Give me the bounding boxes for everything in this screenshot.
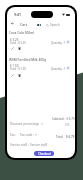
other: Search [46,24,49,27]
button[interactable]: Increase quantity [66,40,70,44]
button[interactable]: Delete [18,74,21,77]
button[interactable]: Cart [20,22,28,27]
staticText: 9:41 [14,12,22,17]
button[interactable]: Edit [11,47,14,50]
button[interactable]: Delete [18,47,21,50]
staticText: $ 1.50 [10,64,19,68]
button[interactable]: Toggle [37,24,41,26]
button[interactable]: Discount percentage [10,122,43,126]
staticText: Quantity : 1 [51,41,66,45]
staticText: Quantity : 1 [51,67,66,71]
staticText: Tax code : [20,133,34,137]
staticText: Total : $ 1.50 [10,67,26,71]
button[interactable]: Edit [11,74,14,77]
button[interactable]: Back [11,22,14,25]
staticText: Discount percentage [10,122,40,126]
staticText: Total : $ 3.25 [10,41,26,45]
staticText: Search [50,23,60,27]
staticText: Total [56,135,63,139]
staticText: Tax : [10,133,17,137]
staticText: Coca Cola 500ml [9,31,35,35]
staticText: $ 6.75 [66,135,75,139]
staticText: Subtotal : $ 6.75 [52,117,75,121]
staticText: $ 3.25 [10,38,19,42]
staticText: Checkout [38,152,51,156]
staticText: Service staff : [10,143,29,147]
staticText: 0 % [65,123,70,127]
staticText: Service staff [30,143,48,147]
button[interactable]: Search [46,23,60,27]
button[interactable]: Increase quantity [66,66,70,70]
staticText: WSM Fortified Milk 400g [9,58,46,62]
button[interactable]: Checkout [34,151,54,156]
